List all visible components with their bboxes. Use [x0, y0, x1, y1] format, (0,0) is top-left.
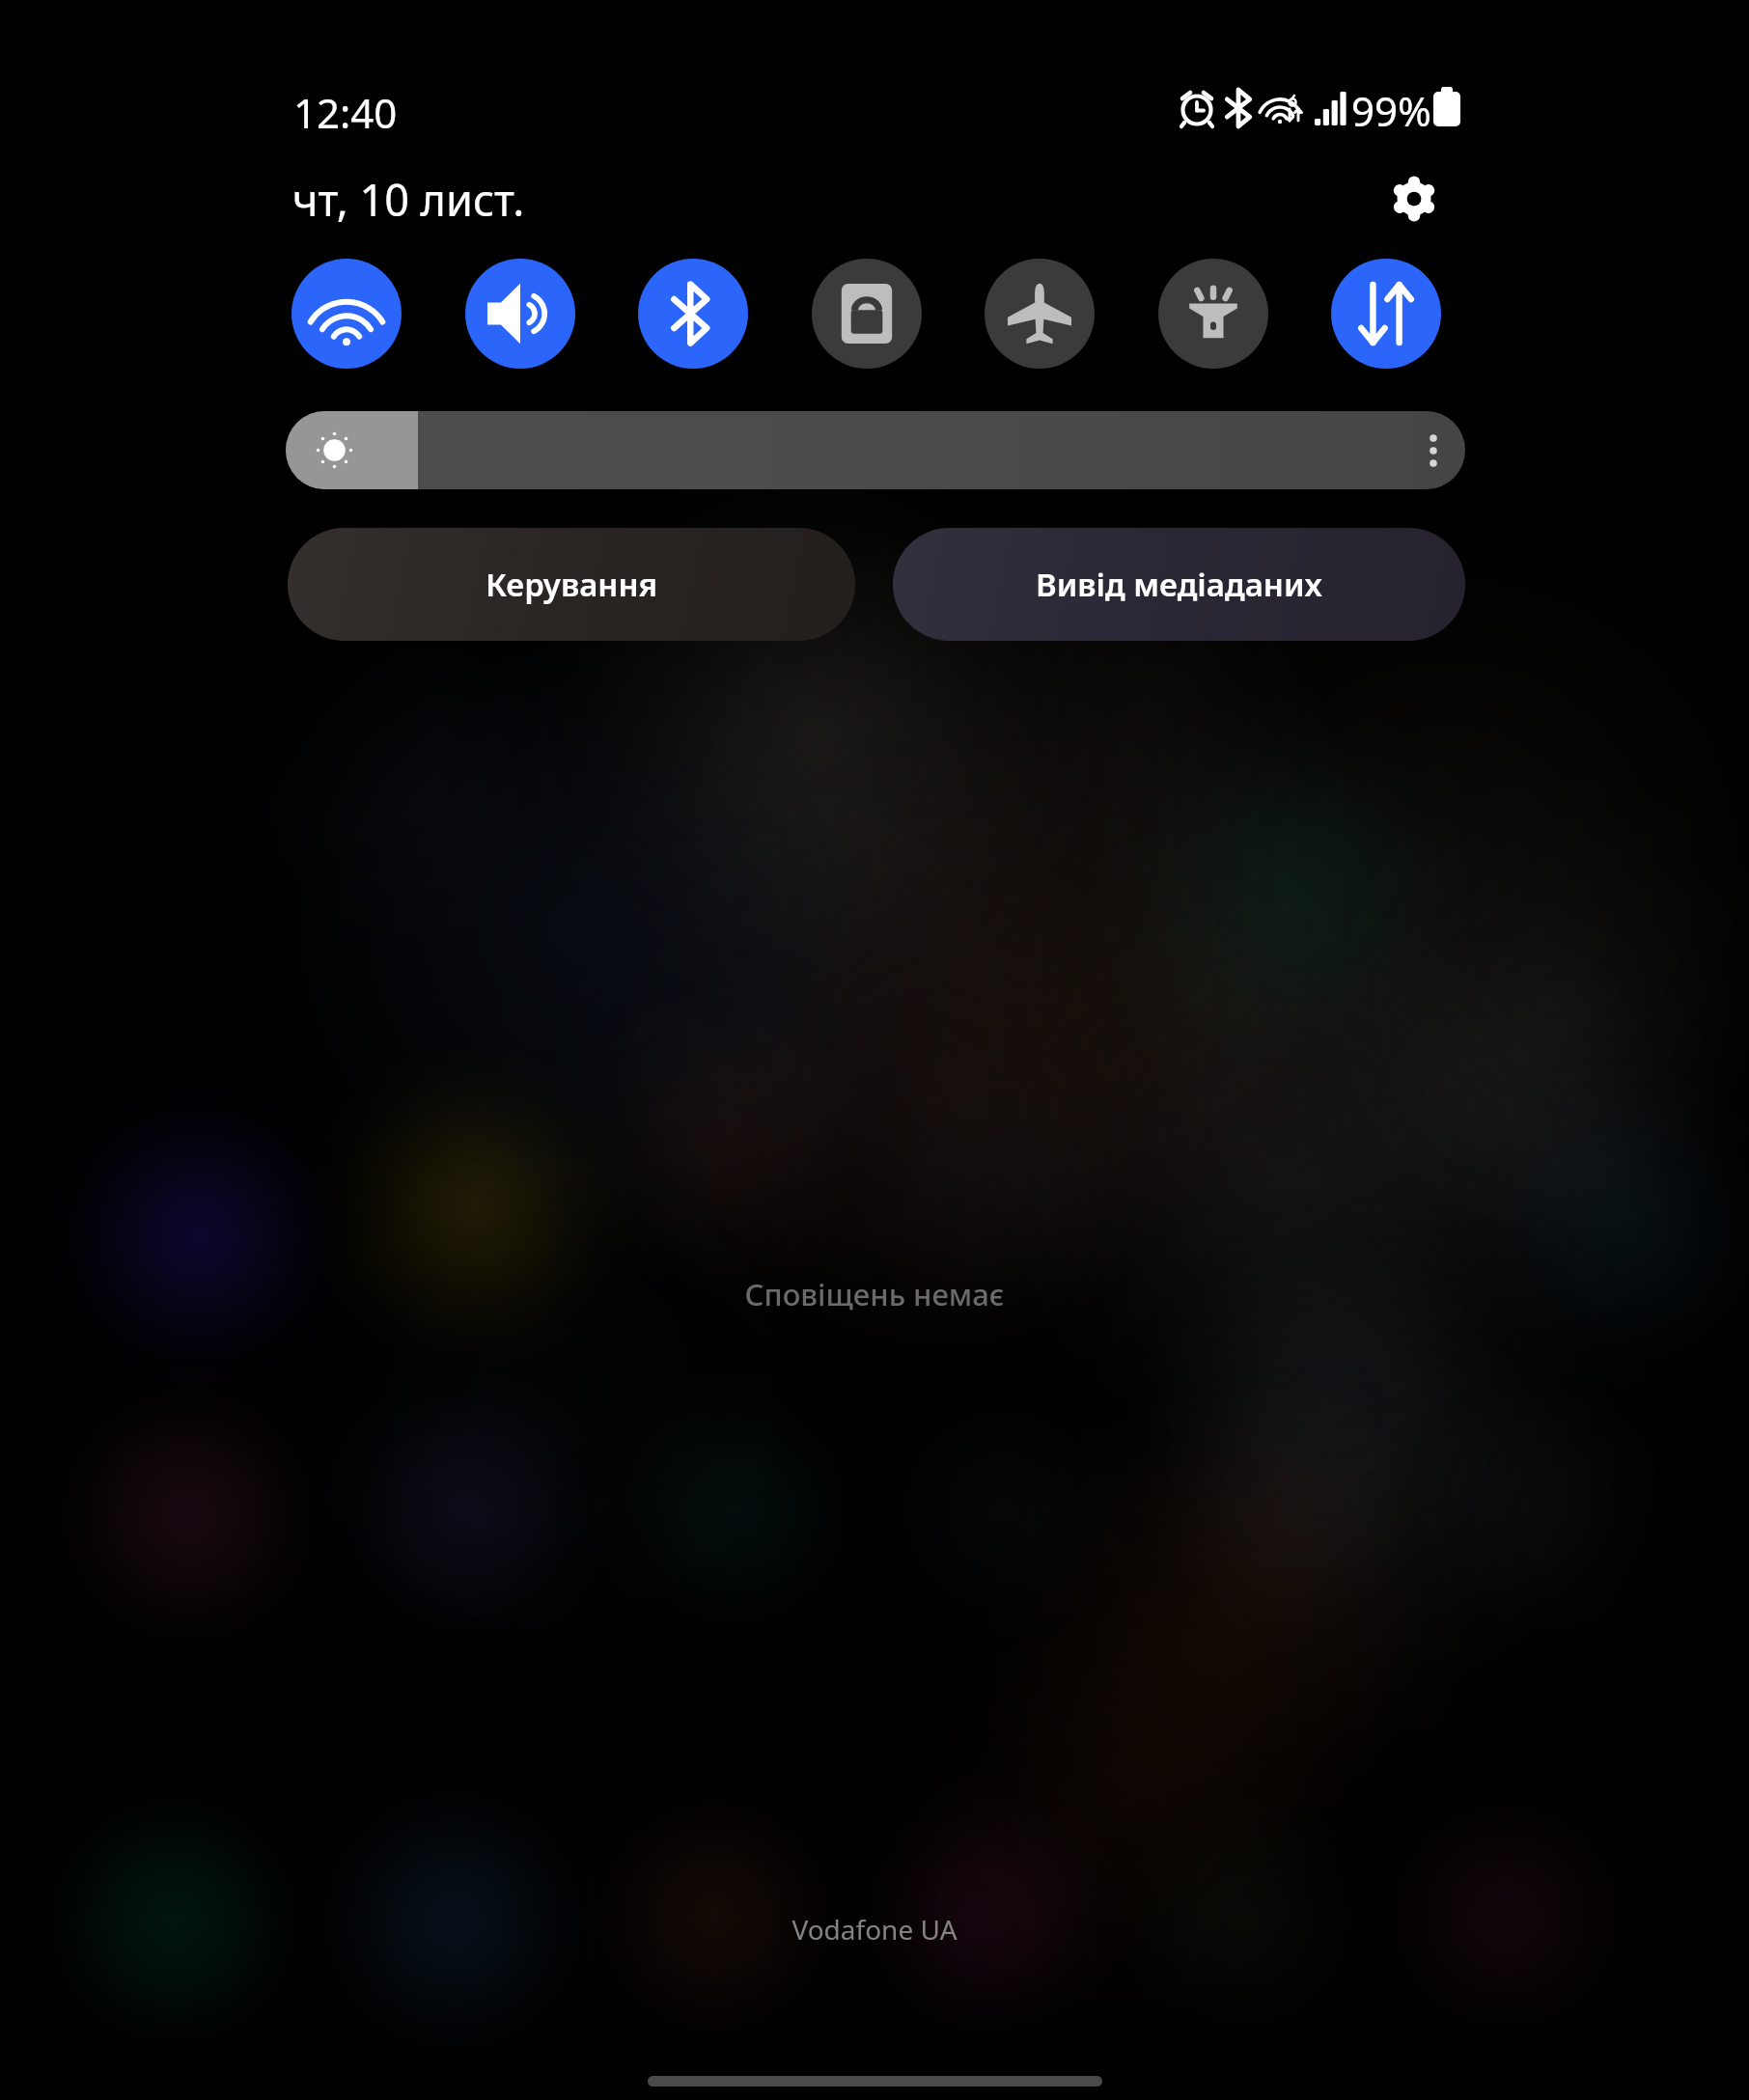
staticText: Керування — [486, 563, 658, 606]
button[interactable]: Brightness options — [1402, 411, 1464, 489]
staticText: Сповіщень немає — [0, 1274, 1749, 1314]
button[interactable]: Auto rotate — [812, 259, 922, 369]
button[interactable]: Flashlight — [1158, 259, 1268, 369]
button[interactable]: Settings — [1374, 158, 1455, 239]
button[interactable]: Керування — [288, 528, 855, 641]
staticText: 12:40 — [293, 85, 398, 140]
button[interactable]: Airplane mode — [985, 259, 1095, 369]
staticText: чт, 10 лист. — [292, 170, 525, 229]
button[interactable]: Wi-Fi — [291, 259, 402, 369]
button[interactable]: Brightness — [286, 411, 1465, 489]
staticText: 99% — [1351, 83, 1431, 138]
button[interactable]: Вивід медіаданих — [893, 528, 1465, 641]
button[interactable]: Sound — [465, 259, 575, 369]
staticText: Vodafone UA — [0, 1911, 1749, 1948]
button[interactable]: Mobile data — [1331, 259, 1441, 369]
staticText: Вивід медіаданих — [1036, 563, 1322, 606]
button[interactable]: Bluetooth — [638, 259, 748, 369]
